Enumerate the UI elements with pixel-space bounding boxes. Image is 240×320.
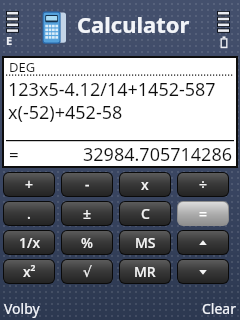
button[interactable]: MS <box>120 231 170 254</box>
button[interactable]: . <box>4 202 54 225</box>
staticText: = <box>199 204 208 223</box>
button[interactable]: ÷ <box>178 173 228 196</box>
staticText: C <box>141 204 150 223</box>
staticText: x² <box>23 262 36 281</box>
button[interactable]: x <box>120 173 170 196</box>
staticText: . <box>27 204 31 223</box>
button[interactable]: Clear <box>192 297 240 320</box>
button[interactable]: + <box>4 173 54 196</box>
button[interactable]: x² <box>4 260 54 283</box>
staticText: 1/x <box>19 233 40 252</box>
staticText: = <box>9 143 19 166</box>
button[interactable]: - <box>62 173 112 196</box>
button[interactable]: Volby <box>0 297 50 320</box>
button[interactable]: Scroll up <box>178 231 228 254</box>
staticText: x(-52)+452-58 <box>8 100 123 125</box>
other: Battery level <box>216 11 234 51</box>
button[interactable]: 1/x <box>4 231 54 254</box>
staticText: √ <box>83 264 92 280</box>
button[interactable]: Scroll down <box>178 260 228 283</box>
button[interactable]: = <box>178 202 228 225</box>
button[interactable]: % <box>62 231 112 254</box>
staticText: 123x5-4.12/14+1452-587 <box>8 77 216 102</box>
staticText: MS <box>135 233 156 252</box>
staticText: - <box>85 175 90 194</box>
staticText: 32984.705714286 <box>19 142 232 166</box>
staticText: Clear <box>202 299 236 318</box>
staticText: MR <box>134 262 156 281</box>
button[interactable]: √ <box>62 260 112 283</box>
staticText: E <box>6 33 13 48</box>
staticText: DEG <box>9 58 36 74</box>
staticText: x <box>141 175 149 194</box>
staticText: + <box>25 175 34 194</box>
staticText: Calculator <box>77 9 190 39</box>
staticText: Volby <box>4 299 40 318</box>
button[interactable]: MR <box>120 260 170 283</box>
staticText: ÷ <box>199 175 208 194</box>
staticText: ± <box>83 204 92 223</box>
staticText: % <box>81 233 93 252</box>
button[interactable]: ± <box>62 202 112 225</box>
other: Signal strength <box>5 11 23 45</box>
button[interactable]: C <box>120 202 170 225</box>
